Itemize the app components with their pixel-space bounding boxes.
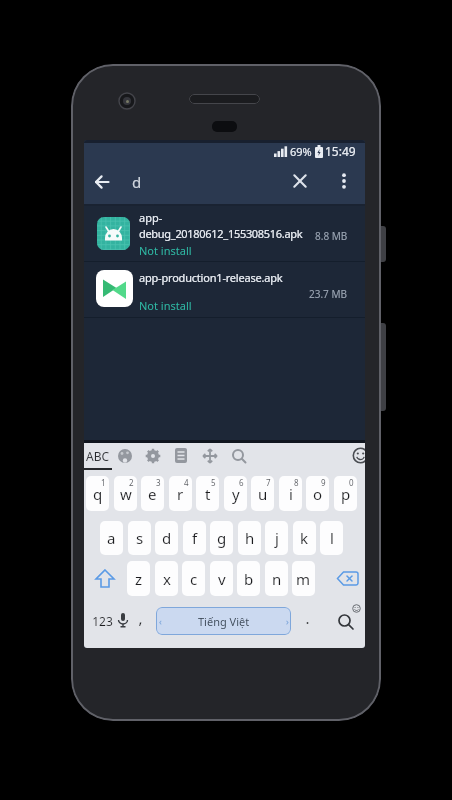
staticText: k (300, 528, 309, 548)
staticText: d (162, 528, 172, 548)
staticText: r (177, 484, 184, 504)
button[interactable]: v (210, 561, 233, 596)
staticText: q (93, 484, 103, 504)
staticText: app- (139, 210, 163, 225)
button[interactable] (336, 612, 358, 634)
staticText: g (217, 528, 227, 548)
staticText: n (272, 569, 282, 589)
staticText: x (163, 569, 171, 589)
staticText: p (341, 484, 351, 504)
staticText: 8.8 MB (315, 229, 348, 243)
staticText: h (245, 528, 255, 548)
button[interactable]: j (265, 521, 288, 555)
button[interactable] (93, 569, 117, 589)
staticText: Tiếng Việt (198, 614, 250, 629)
button[interactable]: x (155, 561, 178, 596)
button[interactable]: o (306, 476, 329, 511)
staticText: 5 (211, 477, 216, 488)
staticText: 0 (349, 477, 354, 488)
staticText: m (296, 569, 311, 589)
button[interactable]: h (238, 521, 261, 555)
staticText: s (136, 528, 144, 548)
button[interactable]: p (334, 476, 357, 511)
staticText: 23.7 MB (309, 287, 348, 301)
staticText: Not install (139, 243, 192, 258)
button[interactable] (88, 168, 116, 196)
button[interactable]: c (182, 561, 205, 596)
staticText: Not install (139, 298, 192, 313)
staticText: 15:49 (325, 143, 356, 159)
staticText: , (138, 608, 143, 628)
button[interactable]: a (100, 521, 123, 555)
staticText: . (305, 608, 310, 626)
staticText: z (135, 569, 143, 589)
staticText: o (313, 484, 323, 504)
staticText: b (244, 569, 254, 589)
button[interactable]: g (210, 521, 233, 555)
button[interactable]: r (169, 476, 192, 511)
staticText: d (132, 172, 142, 192)
staticText: app-production1-release.apk (139, 270, 283, 285)
button[interactable] (84, 204, 365, 261)
staticText: c (190, 569, 198, 589)
staticText: a (107, 528, 116, 548)
staticText: y (232, 484, 240, 504)
button[interactable]: m (292, 561, 315, 596)
staticText: 2 (129, 477, 134, 488)
button[interactable]: w (114, 476, 137, 511)
button[interactable]: y (224, 476, 247, 511)
button[interactable] (336, 571, 359, 587)
button[interactable] (84, 445, 124, 473)
button[interactable]: e (141, 476, 164, 511)
button[interactable] (334, 167, 354, 195)
staticText: f (192, 528, 198, 548)
staticText: 8 (294, 477, 299, 488)
button[interactable]: f (183, 521, 206, 555)
button[interactable]: u (251, 476, 274, 511)
staticText: debug_20180612_155308516.apk (139, 226, 303, 241)
staticText: 123 (92, 613, 113, 629)
staticText: w (120, 484, 132, 504)
button[interactable]: k (293, 521, 316, 555)
staticText: u (258, 484, 268, 504)
staticText: e (148, 484, 157, 504)
staticText: i (289, 484, 293, 504)
button[interactable]: l (320, 521, 343, 555)
staticText: 9 (321, 477, 326, 488)
button[interactable] (84, 262, 365, 317)
staticText: ‹ (159, 615, 162, 627)
button[interactable]: s (128, 521, 151, 555)
button[interactable]: b (237, 561, 260, 596)
button[interactable]: Tiếng Việt (156, 607, 291, 635)
staticText: v (218, 569, 226, 589)
staticText: 69% (290, 144, 312, 159)
staticText: › (286, 615, 289, 627)
button[interactable]: q (86, 476, 109, 511)
button[interactable]: z (127, 561, 150, 596)
button[interactable] (288, 169, 312, 193)
button[interactable]: n (265, 561, 288, 596)
staticText: 3 (156, 477, 161, 488)
staticText: 1 (101, 477, 106, 488)
staticText: ABC (86, 448, 110, 464)
staticText: t (205, 484, 211, 504)
button[interactable]: d (155, 521, 178, 555)
staticText: l (330, 528, 334, 548)
button[interactable]: i (279, 476, 302, 511)
staticText: 7 (266, 477, 271, 488)
staticText: 4 (184, 477, 189, 488)
staticText: 6 (239, 477, 244, 488)
staticText: j (275, 528, 279, 548)
button[interactable]: t (196, 476, 219, 511)
